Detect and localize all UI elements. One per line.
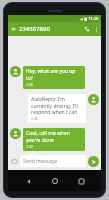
button[interactable]: Recent apps <box>74 174 88 188</box>
button[interactable]: Cool, call me when you're done <box>23 128 85 151</box>
staticText: Hey, what are you up to? <box>26 68 82 82</box>
staticText: 7:46 <box>26 82 33 87</box>
button[interactable]: AutoReply: I'm currently driving, I'll r… <box>28 94 86 123</box>
button[interactable]: Back <box>8 22 19 36</box>
staticText: AutoReply: I'm currently driving, I'll r… <box>31 96 83 116</box>
staticText: Cool, call me when you're done <box>26 130 82 144</box>
staticText: 11:20 <box>88 16 99 21</box>
button[interactable]: More options <box>92 22 101 36</box>
staticText: 7:46 <box>31 116 38 121</box>
button[interactable]: Home <box>48 174 62 188</box>
button[interactable]: Back <box>21 174 35 188</box>
button[interactable]: Send <box>88 156 99 167</box>
button[interactable]: Call <box>81 22 92 36</box>
button[interactable]: Hey, what are you up to? <box>23 66 85 89</box>
button[interactable]: Keyboard <box>10 157 19 166</box>
staticText: 234567890 <box>19 25 81 33</box>
staticText: 7:47 <box>26 144 33 149</box>
button[interactable]: Send message <box>20 155 86 167</box>
staticText: Send message <box>23 158 58 165</box>
